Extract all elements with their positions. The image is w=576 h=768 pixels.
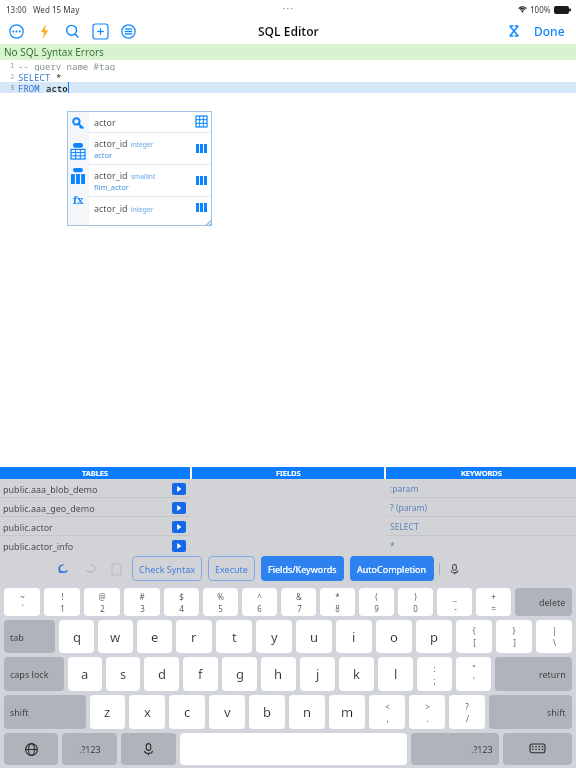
button[interactable]: Fields/Keywords [261, 556, 344, 581]
button[interactable]: y [256, 620, 292, 653]
button[interactable]: Paste [107, 560, 125, 578]
button[interactable]: Check Syntax [132, 556, 202, 581]
button[interactable]: h [261, 657, 296, 691]
button[interactable]: u [296, 620, 332, 653]
button[interactable]: m [329, 695, 365, 729]
staticText: % [217, 591, 224, 602]
button[interactable]: :param [386, 479, 576, 498]
button[interactable]: Hide keyboard [503, 733, 572, 765]
button[interactable]: | [536, 620, 572, 653]
button[interactable]: return [495, 657, 572, 691]
button[interactable]: { [456, 620, 492, 653]
button[interactable]: k [339, 657, 374, 691]
button[interactable]: Expand [506, 23, 522, 39]
button[interactable]: " [456, 657, 491, 691]
button[interactable]: $ [164, 588, 199, 616]
button[interactable]: ( [359, 588, 394, 616]
button[interactable]: actor_id [89, 133, 212, 164]
button[interactable]: shift [4, 695, 86, 729]
button[interactable]: Run [172, 521, 186, 533]
button[interactable]: + [476, 588, 511, 616]
button[interactable]: s [106, 657, 140, 691]
button[interactable]: Dictate [446, 561, 462, 577]
button[interactable]: e [137, 620, 172, 653]
button[interactable]: c [169, 695, 205, 729]
button[interactable]: ~ [4, 588, 40, 616]
button[interactable]: w [98, 620, 133, 653]
button[interactable]: b [249, 695, 285, 729]
button[interactable]: .?123 [411, 733, 499, 765]
button[interactable]: l [378, 657, 413, 691]
button[interactable]: tab [4, 620, 55, 653]
button[interactable]: actor [89, 111, 212, 132]
button[interactable]: t [216, 620, 252, 653]
button[interactable]: * [386, 536, 576, 555]
button[interactable]: ^ [242, 588, 277, 616]
button[interactable]: KEYWORDS [386, 467, 576, 479]
button[interactable]: actor_id [89, 197, 212, 218]
button[interactable]: delete [515, 588, 572, 616]
button[interactable]: SELECT [386, 517, 576, 536]
button[interactable]: a [68, 657, 102, 691]
button[interactable]: f [183, 657, 218, 691]
button[interactable]: Dictate [121, 733, 176, 765]
staticText: actor [94, 150, 113, 160]
button[interactable]: Run [172, 540, 186, 552]
button[interactable]: z [90, 695, 125, 729]
button[interactable]: public.aaa_blob_demo [0, 479, 190, 498]
button[interactable]: Execute [208, 556, 255, 581]
button[interactable]: Done [532, 21, 567, 41]
button[interactable]: Add [92, 23, 109, 40]
button[interactable]: More [8, 23, 25, 40]
button[interactable]: : [417, 657, 452, 691]
button[interactable]: n [289, 695, 325, 729]
button[interactable]: caps lock [4, 657, 64, 691]
button[interactable]: public.actor [0, 517, 190, 536]
staticText: shift [10, 706, 29, 718]
button[interactable]: & [281, 588, 316, 616]
button[interactable]: FIELDS [192, 467, 384, 479]
button[interactable]: .?123 [62, 733, 117, 765]
button[interactable]: v [209, 695, 245, 729]
button[interactable]: j [300, 657, 335, 691]
staticText: p [430, 628, 438, 646]
button[interactable]: p [416, 620, 452, 653]
button[interactable]: Run [172, 502, 186, 514]
button[interactable]: i [336, 620, 372, 653]
button[interactable]: actor_id [89, 165, 212, 196]
staticText: = [491, 603, 496, 614]
button[interactable]: # [124, 588, 160, 616]
staticText: return [539, 668, 566, 680]
button[interactable]: < [369, 695, 405, 729]
button[interactable]: d [144, 657, 179, 691]
button[interactable]: Redo [81, 560, 99, 578]
button[interactable]: q [59, 620, 94, 653]
button[interactable]: o [376, 620, 412, 653]
button[interactable]: ) [398, 588, 433, 616]
button[interactable]: _ [437, 588, 472, 616]
button[interactable]: public.actor_info [0, 536, 190, 555]
button[interactable]: History [120, 23, 137, 40]
button[interactable]: @ [84, 588, 120, 616]
button[interactable]: public.aaa_geo_demo [0, 498, 190, 517]
button[interactable]: r [176, 620, 212, 653]
button[interactable]: * [320, 588, 355, 616]
button[interactable]: Undo [55, 560, 73, 578]
button[interactable]: Search [64, 23, 81, 40]
button[interactable]: > [409, 695, 445, 729]
button[interactable]: Run [172, 483, 186, 495]
button[interactable]: Change keyboard [4, 733, 58, 765]
button[interactable]: AutoCompletion [350, 556, 434, 581]
button[interactable]: shift [489, 695, 572, 729]
button[interactable]: ? [449, 695, 485, 729]
button[interactable]: } [496, 620, 532, 653]
button[interactable]: g [222, 657, 257, 691]
button[interactable]: ? (param) [386, 498, 576, 517]
button[interactable]: TABLES [0, 467, 190, 479]
button[interactable]: Run query [36, 23, 53, 40]
button[interactable]: ! [44, 588, 80, 616]
staticText: ' [473, 675, 475, 686]
button[interactable]: % [203, 588, 238, 616]
button[interactable]: x [129, 695, 165, 729]
